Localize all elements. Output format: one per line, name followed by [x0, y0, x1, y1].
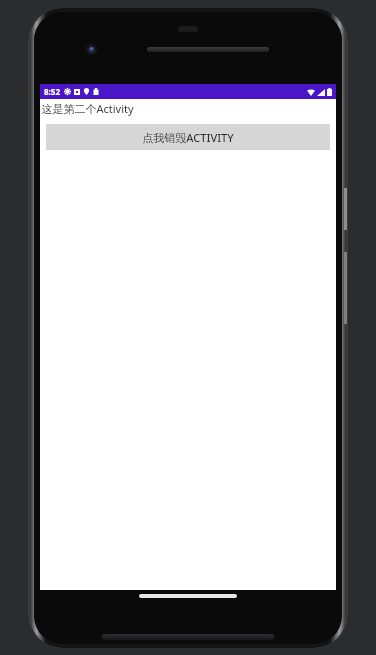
staticText: 8:52: [44, 86, 60, 97]
staticText: 点我销毁ACTIVITY: [142, 130, 234, 145]
staticText: 这是第二个Activity: [41, 101, 134, 116]
button[interactable]: 点我销毁ACTIVITY: [46, 124, 330, 150]
